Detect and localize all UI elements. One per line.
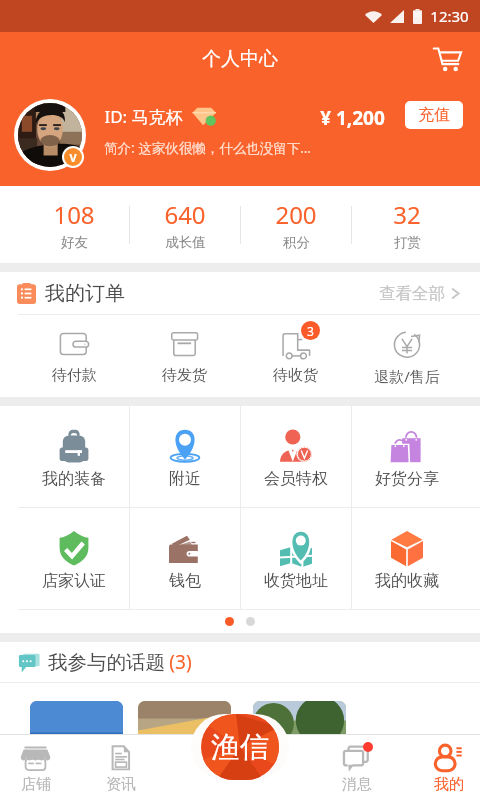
staticText: 资讯 xyxy=(106,775,136,794)
staticText: 12:30 xyxy=(430,6,469,26)
button[interactable]: 32 xyxy=(352,186,462,263)
button[interactable]: 待付款 xyxy=(19,315,129,397)
button[interactable] xyxy=(138,701,231,771)
staticText: 会员特权 xyxy=(264,469,328,489)
button[interactable]: 会员特权 xyxy=(241,406,351,507)
staticText: 消息 xyxy=(342,775,372,794)
staticText: 收货地址 xyxy=(264,571,328,591)
button[interactable]: 待发货 xyxy=(129,315,240,397)
staticText: 充值 xyxy=(418,105,450,125)
button[interactable]: 我的收藏 xyxy=(352,508,462,609)
staticText: 附近 xyxy=(169,469,201,489)
button[interactable]: 钱包 xyxy=(130,508,240,609)
staticText: V xyxy=(69,150,77,165)
staticText: 待发货 xyxy=(162,366,207,385)
button[interactable]: 渔信 xyxy=(191,714,289,780)
staticText: ¥ 1,200 xyxy=(320,105,385,131)
button[interactable]: 我参与的话题 xyxy=(0,642,480,682)
button[interactable]: 退款/售后 xyxy=(351,315,462,397)
staticText: 待付款 xyxy=(52,366,97,385)
staticText: 简介: 这家伙很懒，什么也没留下… xyxy=(104,139,311,157)
button[interactable]: 640 xyxy=(130,186,240,263)
button[interactable]: 充值 xyxy=(405,101,463,129)
staticText: 打赏 xyxy=(394,234,421,251)
staticText: 我的装备 xyxy=(42,469,106,489)
staticText: 我的 xyxy=(434,775,464,794)
button[interactable]: 我的订单 xyxy=(0,272,480,314)
button[interactable]: 好货分享 xyxy=(352,406,462,507)
staticText: 好货分享 xyxy=(375,469,439,489)
staticText: (3) xyxy=(169,649,192,675)
staticText: 我的订单 xyxy=(45,281,125,306)
button[interactable]: 我的 xyxy=(413,734,480,800)
staticText: 渔信 xyxy=(211,729,269,766)
staticText: 个人中心 xyxy=(202,47,278,71)
staticText: 店铺 xyxy=(21,775,51,794)
button[interactable]: 收货地址 xyxy=(241,508,351,609)
staticText: 好友 xyxy=(61,234,88,251)
button[interactable]: 附近 xyxy=(130,406,240,507)
staticText: 退款/售后 xyxy=(374,366,440,386)
staticText: 积分 xyxy=(283,234,310,251)
staticText: 我参与的话题 xyxy=(48,650,165,675)
button[interactable]: V xyxy=(0,85,480,186)
staticText: ID: 马克杯 xyxy=(104,105,183,128)
button[interactable]: 资讯 xyxy=(85,734,155,800)
staticText: 成长值 xyxy=(165,234,206,251)
button[interactable]: 店铺 xyxy=(0,734,70,800)
staticText: 200 xyxy=(275,198,317,231)
staticText: 我的收藏 xyxy=(375,571,439,591)
staticText: 640 xyxy=(164,198,206,231)
button[interactable]: 108 xyxy=(19,186,129,263)
staticText: 32 xyxy=(393,198,421,231)
button[interactable]: 消息 xyxy=(321,734,391,800)
staticText: 钱包 xyxy=(169,571,201,591)
button[interactable] xyxy=(30,701,123,771)
staticText: 108 xyxy=(53,198,95,231)
button[interactable] xyxy=(253,701,346,771)
button[interactable]: 3 xyxy=(240,315,351,397)
button[interactable]: 店家认证 xyxy=(19,508,129,609)
button[interactable]: 我的装备 xyxy=(19,406,129,507)
button[interactable]: 200 xyxy=(241,186,351,263)
staticText: 查看全部 xyxy=(379,283,445,304)
staticText: 店家认证 xyxy=(42,571,106,591)
staticText: 待收货 xyxy=(273,366,318,385)
button[interactable]: Shopping cart xyxy=(426,38,468,80)
staticText: 3 xyxy=(307,323,314,339)
